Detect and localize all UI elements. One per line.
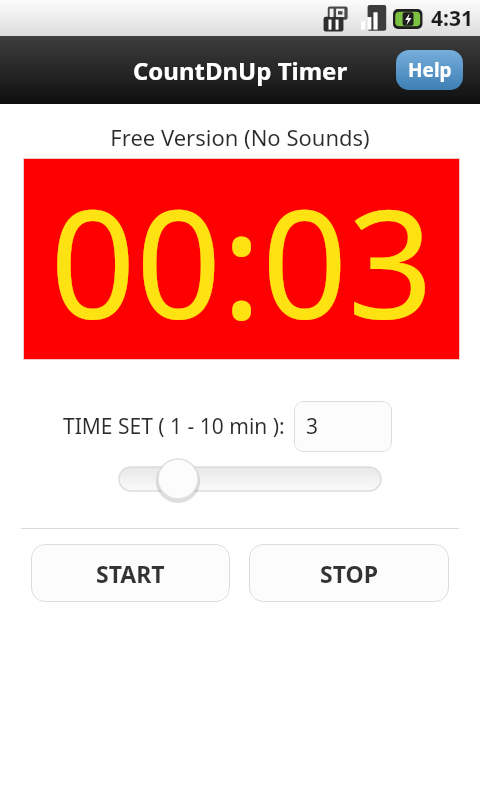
button[interactable]: Help bbox=[396, 50, 463, 90]
button[interactable]: START bbox=[31, 544, 230, 602]
staticText: 3 bbox=[306, 412, 319, 441]
staticText: TIME SET ( 1 - 10 min ): bbox=[63, 412, 285, 441]
button[interactable]: STOP bbox=[249, 544, 449, 602]
staticText: STOP bbox=[320, 558, 378, 589]
staticText: Help bbox=[408, 57, 452, 83]
staticText: 4:31 bbox=[431, 4, 473, 33]
staticText: Free Version (No Sounds) bbox=[0, 122, 480, 152]
button[interactable]: Time slider bbox=[0, 455, 480, 503]
button[interactable]: 3 bbox=[294, 401, 392, 452]
staticText: CountDnUp Timer bbox=[0, 54, 480, 87]
staticText: 00:03 bbox=[50, 159, 434, 359]
staticText: START bbox=[96, 558, 165, 589]
